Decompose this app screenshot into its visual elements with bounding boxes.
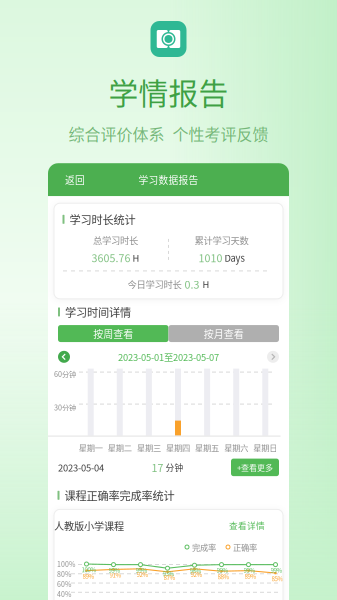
staticText: 2023-05-01至2023-05-07 xyxy=(118,350,219,364)
staticText: 93% xyxy=(162,569,174,578)
staticText: 2023-05-04 xyxy=(58,461,104,474)
button[interactable]: 按周查看 xyxy=(58,325,168,342)
staticText: 星期六 xyxy=(224,442,248,454)
staticText: 正确率 xyxy=(233,541,257,553)
staticText: 0.3 xyxy=(184,276,199,292)
staticText: 总学习时长 xyxy=(93,233,138,247)
button[interactable]: Previous week xyxy=(58,351,70,363)
staticText: 99% xyxy=(216,566,228,574)
staticText: 17 xyxy=(151,460,163,475)
staticText: 学习时间详情 xyxy=(65,304,131,320)
staticText: 91% xyxy=(109,570,121,579)
staticText: 99% xyxy=(243,566,255,574)
staticText: 星期二 xyxy=(108,442,132,454)
staticText: 查看详情 xyxy=(229,519,265,532)
staticText: 99% xyxy=(135,566,147,574)
staticText: 92% xyxy=(190,570,202,579)
staticText: 1010 xyxy=(198,250,222,265)
staticText: 100% xyxy=(57,559,75,569)
staticText: 3605.76 xyxy=(91,250,130,265)
staticText: 60分钟 xyxy=(54,369,76,379)
staticText: 课程正确率完成率统计 xyxy=(64,487,174,503)
button[interactable]: Next week xyxy=(267,351,279,363)
staticText: 40% xyxy=(57,589,71,599)
staticText: 98% xyxy=(189,566,201,575)
staticText: 80% xyxy=(57,569,71,579)
staticText: 99% xyxy=(108,566,120,574)
staticText: 星期三 xyxy=(137,442,161,454)
staticText: 人教版小学课程 xyxy=(54,518,124,533)
staticText: 87% xyxy=(163,573,175,582)
staticText: 返回 xyxy=(65,173,85,187)
staticText: 89% xyxy=(82,572,94,580)
button[interactable]: +查看更多 xyxy=(231,459,279,476)
staticText: +查看更多 xyxy=(237,462,273,473)
staticText: 89% xyxy=(244,572,256,580)
staticText: Days xyxy=(224,251,244,264)
staticText: 星期日 xyxy=(253,442,277,454)
staticText: 按月查看 xyxy=(204,326,244,341)
staticText: 学习数据报告 xyxy=(138,173,198,187)
staticText: 99% xyxy=(270,566,282,574)
staticText: 100% xyxy=(81,565,96,574)
staticText: H xyxy=(132,251,139,264)
staticText: 累计学习天数 xyxy=(194,233,248,247)
staticText: 按周查看 xyxy=(93,326,133,341)
staticText: 学情报告 xyxy=(108,70,228,113)
staticText: 星期一 xyxy=(79,442,103,454)
staticText: 学习时长统计 xyxy=(69,211,135,227)
staticText: 30分钟 xyxy=(54,402,76,412)
staticText: 92% xyxy=(136,570,148,579)
staticText: 85% xyxy=(271,574,283,583)
button[interactable]: 返回 xyxy=(59,169,91,191)
staticText: 分钟 xyxy=(165,461,183,474)
staticText: H xyxy=(202,277,209,291)
staticText: 今日学习时长 xyxy=(127,277,181,291)
staticText: 完成率 xyxy=(192,541,216,553)
staticText: 星期四 xyxy=(166,442,190,454)
staticText: 88% xyxy=(217,572,229,581)
button[interactable]: 查看详情 xyxy=(229,519,265,532)
staticText: 综合评价体系 个性考评反馈 xyxy=(68,122,268,145)
button[interactable]: 按月查看 xyxy=(168,325,279,342)
staticText: 60% xyxy=(57,579,71,589)
staticText: 星期五 xyxy=(195,442,219,454)
